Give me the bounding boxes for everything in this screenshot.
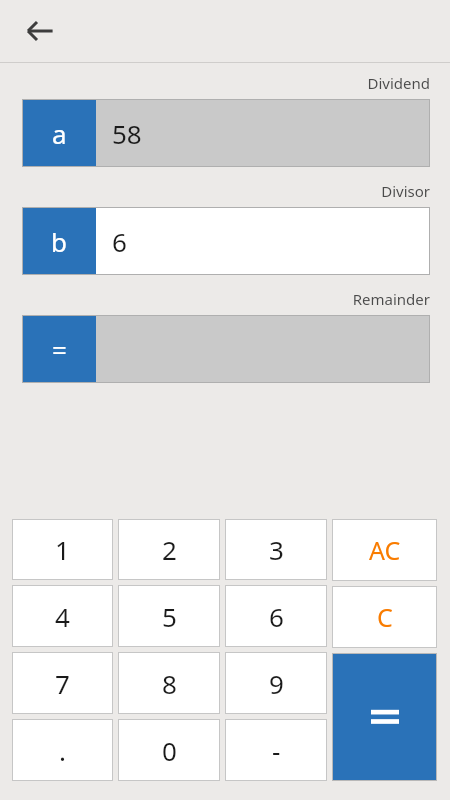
staticText: C xyxy=(377,600,393,634)
button[interactable]: 0 xyxy=(118,719,220,781)
staticText: 0 xyxy=(162,733,177,768)
staticText: 1 xyxy=(55,532,70,567)
button[interactable]: - xyxy=(225,719,327,781)
staticText: 58 xyxy=(112,116,142,151)
button[interactable]: . xyxy=(12,719,113,781)
button[interactable]: 2 xyxy=(118,519,220,580)
staticText: 8 xyxy=(162,666,177,701)
button[interactable]: 8 xyxy=(118,652,220,714)
staticText: Remainder xyxy=(0,289,430,309)
staticText: 4 xyxy=(55,599,70,634)
button[interactable]: AC xyxy=(332,519,437,581)
staticText: 6 xyxy=(269,599,284,634)
button[interactable]: b xyxy=(22,207,430,275)
staticText: Divisor xyxy=(0,181,430,201)
staticText: AC xyxy=(369,533,401,567)
staticText: 5 xyxy=(162,599,177,634)
button[interactable]: 9 xyxy=(225,652,327,714)
button[interactable]: C xyxy=(332,586,437,648)
button[interactable]: Back xyxy=(14,5,66,57)
staticText: 2 xyxy=(162,532,177,567)
button[interactable]: Equals xyxy=(332,653,437,781)
staticText: b xyxy=(51,224,67,259)
staticText: 6 xyxy=(112,224,127,259)
button[interactable]: a xyxy=(22,99,430,167)
staticText: 7 xyxy=(55,666,70,701)
staticText: 9 xyxy=(269,666,284,701)
button[interactable]: 4 xyxy=(12,585,113,647)
staticText: . xyxy=(59,733,66,768)
staticText: Dividend xyxy=(0,73,430,93)
button[interactable]: 6 xyxy=(225,585,327,647)
button[interactable]: 7 xyxy=(12,652,113,714)
staticText: = xyxy=(52,332,67,367)
button[interactable]: 1 xyxy=(12,519,113,580)
staticText: 3 xyxy=(269,532,284,567)
staticText: - xyxy=(272,733,281,768)
staticText: a xyxy=(52,116,67,151)
button[interactable]: 3 xyxy=(225,519,327,580)
button[interactable]: = xyxy=(22,315,430,383)
button[interactable]: 5 xyxy=(118,585,220,647)
